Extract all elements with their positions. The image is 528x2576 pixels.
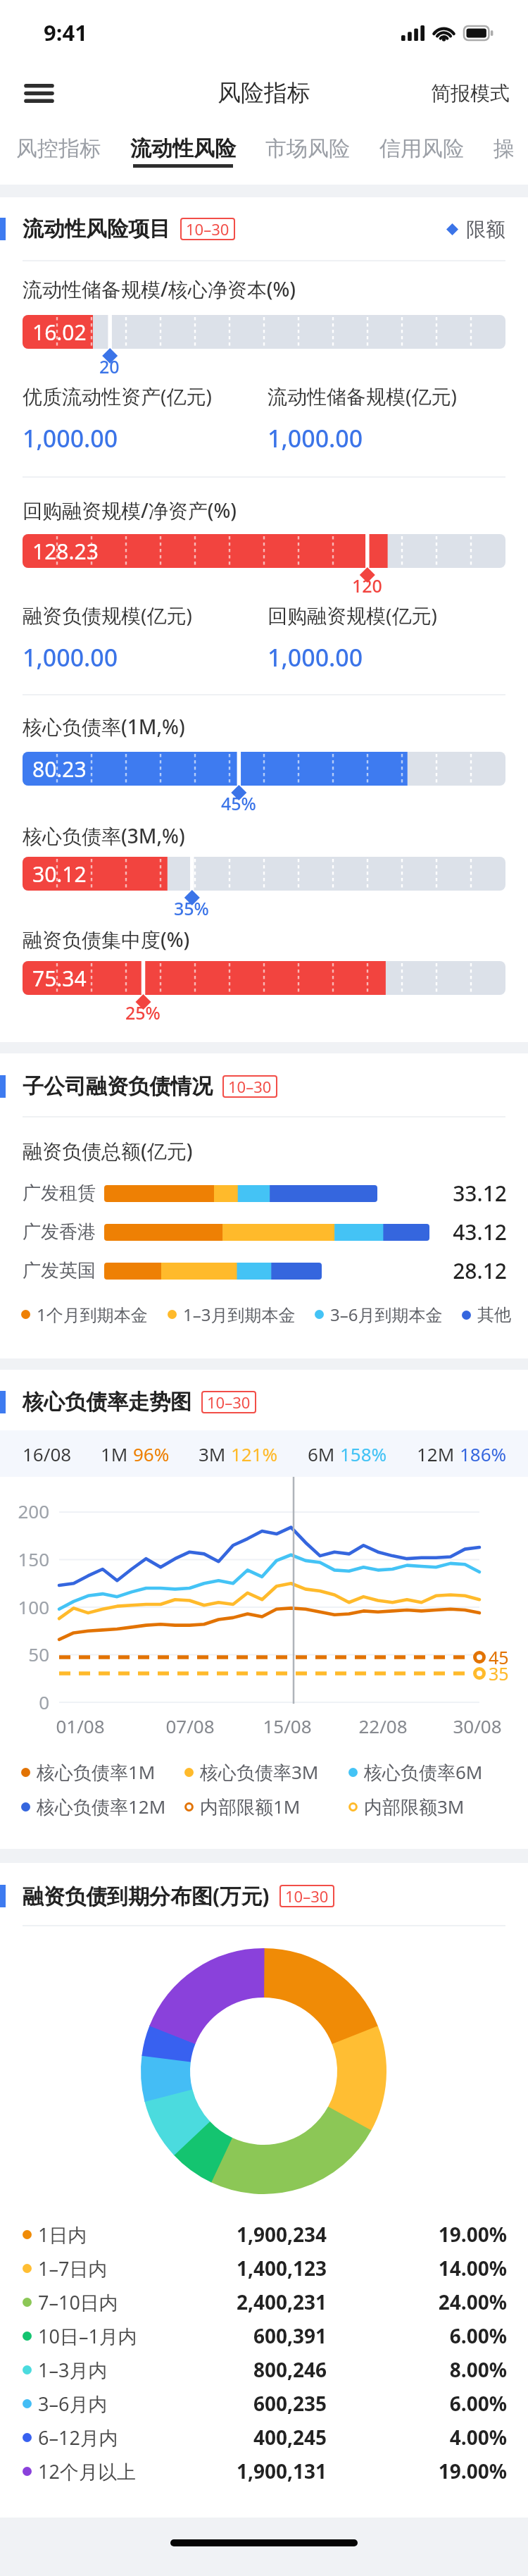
staticText: 10–30 — [186, 218, 230, 240]
staticText: 核心负债率(1M,%) — [23, 713, 185, 740]
button[interactable]: 风控指标 — [1, 124, 115, 185]
staticText: 19.00% — [415, 2458, 507, 2484]
button[interactable]: 信用风险 — [365, 124, 479, 185]
staticText: 1M — [101, 1442, 133, 1466]
staticText: 1个月到期本金 — [37, 1303, 148, 1326]
staticText: 07/08 — [155, 1714, 225, 1738]
staticText: 7–10日内 — [38, 2289, 207, 2315]
staticText: 广发香港 — [23, 1220, 104, 1244]
staticText: 25% — [125, 1001, 161, 1024]
staticText: 33.12 — [429, 1179, 507, 1208]
staticText: 96% — [133, 1442, 170, 1466]
staticText: 操作风险 — [494, 135, 513, 162]
staticText: 0 — [3, 1690, 49, 1714]
staticText: 01/08 — [45, 1714, 115, 1738]
staticText: 3–6月内 — [38, 2391, 207, 2417]
staticText: 6M — [308, 1442, 340, 1466]
staticText: 核心负债率(3M,%) — [23, 822, 185, 849]
staticText: 16/08 — [23, 1442, 72, 1466]
staticText: 150 — [3, 1547, 49, 1571]
staticText: 风险指标 — [218, 78, 310, 108]
staticText: 600,391 — [207, 2322, 327, 2349]
staticText: 2,400,231 — [207, 2289, 327, 2315]
staticText: 22/08 — [348, 1714, 418, 1738]
staticText: 核心负债率3M — [200, 1759, 319, 1785]
staticText: 1日内 — [38, 2222, 207, 2248]
staticText: 120 — [352, 574, 382, 597]
staticText: 子公司融资负债情况 — [23, 1073, 213, 1100]
staticText: 优质流动性资产(亿元) — [23, 383, 212, 409]
staticText: 14.00% — [415, 2255, 507, 2281]
staticText: 流动性储备规模(亿元) — [268, 383, 457, 409]
staticText: 市场风险 — [265, 135, 350, 162]
staticText: 30/08 — [442, 1714, 513, 1738]
staticText: 10–30 — [207, 1392, 251, 1413]
staticText: 风控指标 — [16, 135, 101, 162]
button[interactable]: 流动性风险 — [115, 124, 251, 185]
staticText: 融资负债总额(亿元) — [23, 1137, 193, 1164]
staticText: 20 — [99, 354, 120, 378]
staticText: 流动性风险项目 — [23, 216, 170, 242]
staticText: 核心负债率6M — [364, 1759, 483, 1785]
staticText: 广发英国 — [23, 1259, 104, 1282]
staticText: 核心负债率1M — [37, 1759, 156, 1785]
staticText: 24.00% — [415, 2289, 507, 2315]
staticText: 10–30 — [285, 1885, 329, 1907]
staticText: 35% — [174, 896, 209, 920]
staticText: 45 — [489, 1645, 509, 1669]
staticText: 3–6月到期本金 — [330, 1303, 443, 1326]
staticText: 内部限额1M — [200, 1794, 301, 1819]
staticText: 内部限额3M — [364, 1794, 465, 1819]
staticText: 1–7日内 — [38, 2255, 207, 2281]
staticText: 80.23 — [32, 755, 87, 784]
staticText: 核心负债率走势图 — [23, 1389, 191, 1416]
button[interactable]: Menu — [11, 66, 66, 120]
staticText: 158% — [340, 1442, 387, 1466]
staticText: 6.00% — [415, 2390, 507, 2417]
staticText: 19.00% — [415, 2221, 507, 2248]
staticText: 400,245 — [207, 2424, 327, 2451]
staticText: 10日–1月内 — [38, 2323, 207, 2349]
button[interactable]: 市场风险 — [251, 124, 365, 185]
staticText: 回购融资规模/净资产(%) — [23, 497, 237, 524]
staticText: 核心负债率12M — [37, 1794, 166, 1819]
staticText: 3M — [199, 1442, 231, 1466]
staticText: 融资负债集中度(%) — [23, 926, 190, 953]
staticText: 流动性风险 — [130, 135, 236, 162]
staticText: 10–30 — [228, 1076, 272, 1097]
staticText: 简报模式 — [431, 81, 510, 106]
staticText: 121% — [231, 1442, 278, 1466]
staticText: 30.12 — [32, 860, 87, 888]
staticText: 融资负债规模(亿元) — [23, 602, 192, 628]
staticText: 1,900,234 — [207, 2221, 327, 2248]
staticText: 1–3月到期本金 — [183, 1303, 296, 1326]
staticText: 1,000.00 — [23, 641, 118, 674]
staticText: 12个月以上 — [38, 2458, 207, 2484]
staticText: 1–3月内 — [38, 2357, 207, 2383]
staticText: 6.00% — [415, 2322, 507, 2349]
staticText: 45% — [221, 791, 256, 815]
staticText: 1,000.00 — [268, 641, 363, 674]
staticText: 43.12 — [429, 1218, 507, 1246]
staticText: 1,900,131 — [207, 2458, 327, 2484]
staticText: 回购融资规模(亿元) — [268, 602, 437, 628]
staticText: 800,246 — [207, 2356, 327, 2383]
staticText: 信用风险 — [379, 135, 464, 162]
staticText: 12M — [417, 1442, 460, 1466]
staticText: 35 — [489, 1661, 509, 1685]
staticText: 8.00% — [415, 2356, 507, 2383]
staticText: 流动性储备规模/核心净资本(%) — [23, 275, 296, 302]
staticText: 限额 — [466, 217, 505, 242]
staticText: 15/08 — [252, 1714, 322, 1738]
button[interactable]: 操作风险 — [479, 124, 528, 185]
staticText: 9:41 — [44, 18, 87, 47]
staticText: 128.23 — [32, 537, 99, 566]
staticText: 6–12月内 — [38, 2425, 207, 2451]
staticText: 1,400,123 — [207, 2255, 327, 2281]
staticText: 600,235 — [207, 2390, 327, 2417]
staticText: 75.34 — [32, 964, 87, 993]
button[interactable]: 简报模式 — [413, 70, 528, 117]
staticText: 100 — [3, 1594, 49, 1619]
staticText: 16.02 — [32, 318, 87, 347]
staticText: 28.12 — [429, 1256, 507, 1285]
